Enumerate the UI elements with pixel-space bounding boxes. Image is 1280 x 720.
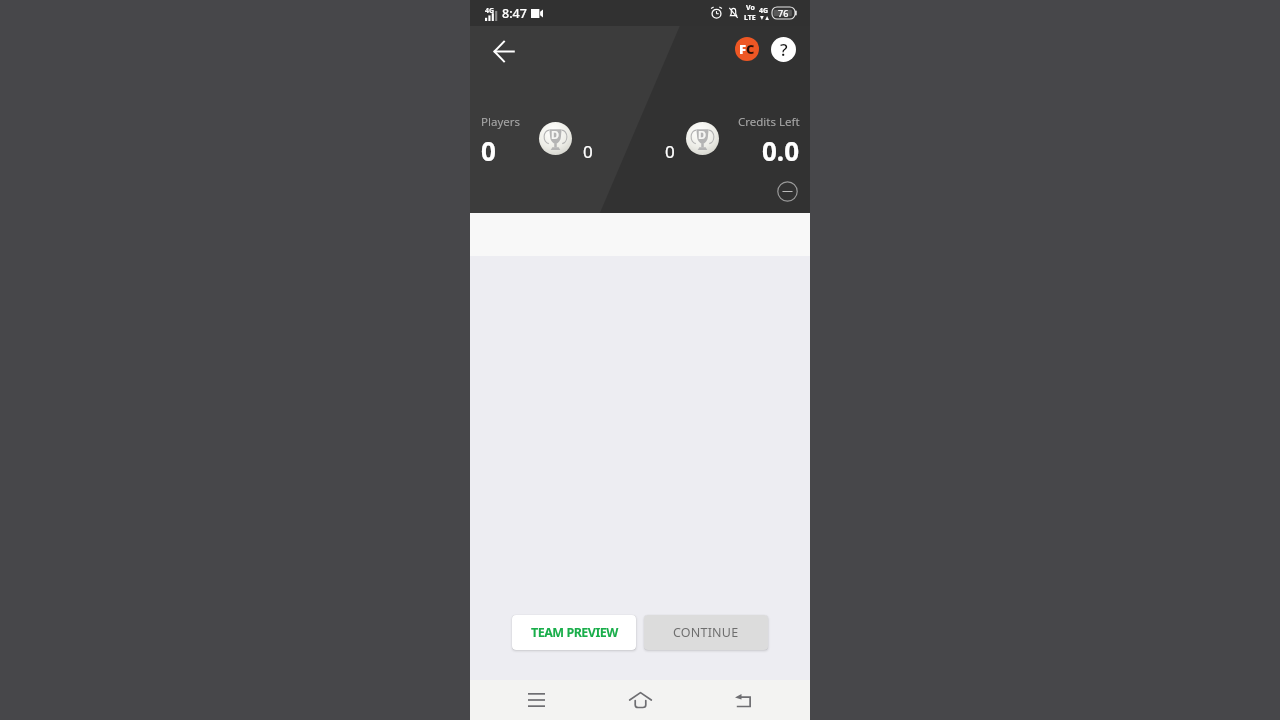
staticText: D <box>698 127 707 142</box>
button[interactable]: Fantasy Cricket <box>730 32 763 65</box>
staticText: 4G <box>759 6 769 16</box>
staticText: 0.0 <box>762 133 800 168</box>
button[interactable]: TEAM PREVIEW <box>512 615 636 650</box>
button[interactable]: Help <box>767 33 800 66</box>
staticText: Players <box>481 114 520 130</box>
staticText: TEAM PREVIEW <box>531 624 618 641</box>
staticText: 76 <box>778 7 789 19</box>
button[interactable]: Back <box>724 686 764 714</box>
staticText: 0 <box>583 140 593 163</box>
button[interactable]: Back <box>484 31 524 71</box>
staticText: Credits Left <box>738 114 800 130</box>
button[interactable]: CONTINUE <box>644 615 768 650</box>
button[interactable]: Collapse <box>774 178 800 204</box>
staticText: D <box>551 127 560 142</box>
staticText: CONTINUE <box>673 624 739 641</box>
staticText: 0 <box>665 140 675 163</box>
staticText: C <box>746 40 755 58</box>
button[interactable]: Recents <box>516 686 556 714</box>
button[interactable]: Home <box>620 685 660 715</box>
staticText: F <box>739 40 747 58</box>
staticText: 4G <box>485 6 495 16</box>
staticText: LTE <box>744 13 756 23</box>
staticText: 8:47 <box>502 5 527 22</box>
staticText: ? <box>780 38 788 61</box>
staticText: Vo <box>746 3 755 13</box>
staticText: 0 <box>481 133 496 168</box>
